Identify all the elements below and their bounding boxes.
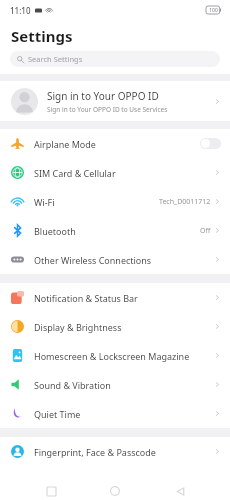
staticText: Off bbox=[200, 226, 211, 236]
staticText: Sign in to Your OPPO ID to Use Services bbox=[47, 105, 168, 114]
button[interactable]: Sign in to Your OPPO ID bbox=[0, 81, 230, 121]
button[interactable]: Recents bbox=[37, 482, 65, 500]
button[interactable]: Quiet Time bbox=[0, 399, 230, 428]
staticText: Settings bbox=[11, 26, 73, 46]
button[interactable]: Back bbox=[166, 482, 194, 500]
button[interactable]: Search Settings bbox=[10, 51, 220, 67]
staticText: Sign in to Your OPPO ID bbox=[47, 89, 159, 103]
button[interactable]: Fingerprint, Face & Passcode bbox=[0, 437, 230, 466]
button[interactable]: Airplane Mode bbox=[0, 129, 230, 158]
other: Airplane Mode toggle bbox=[200, 138, 221, 149]
staticText: 11:10 bbox=[10, 5, 31, 16]
staticText: Quiet Time bbox=[34, 408, 81, 420]
button[interactable]: Notification & Status Bar bbox=[0, 283, 230, 312]
staticText: Notification & Status Bar bbox=[34, 292, 138, 304]
staticText: 100 bbox=[209, 7, 218, 14]
staticText: Other Wireless Connections bbox=[34, 254, 152, 266]
staticText: Sound & Vibration bbox=[34, 379, 111, 391]
button[interactable]: Other Wireless Connections bbox=[0, 245, 230, 274]
button[interactable]: Home bbox=[101, 482, 129, 500]
button[interactable]: SIM Card & Cellular bbox=[0, 158, 230, 187]
button[interactable]: Bluetooth bbox=[0, 216, 230, 245]
button[interactable]: Display & Brightness bbox=[0, 312, 230, 341]
staticText: Bluetooth bbox=[34, 225, 76, 237]
button[interactable]: Homescreen & Lockscreen Magazine bbox=[0, 341, 230, 370]
staticText: Search Settings bbox=[28, 54, 83, 64]
staticText: Airplane Mode bbox=[34, 138, 96, 150]
staticText: SIM Card & Cellular bbox=[34, 167, 116, 179]
staticText: Wi-Fi bbox=[34, 196, 55, 208]
staticText: Tech_D0011712 bbox=[159, 197, 211, 207]
staticText: Display & Brightness bbox=[34, 321, 122, 333]
staticText: Homescreen & Lockscreen Magazine bbox=[34, 350, 190, 362]
staticText: Fingerprint, Face & Passcode bbox=[34, 446, 156, 458]
button[interactable]: Wi-Fi bbox=[0, 187, 230, 216]
button[interactable]: Sound & Vibration bbox=[0, 370, 230, 399]
